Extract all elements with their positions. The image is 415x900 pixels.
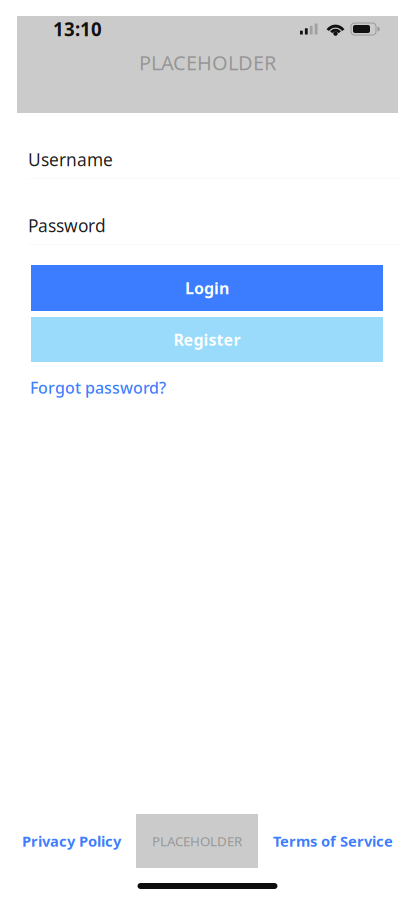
staticText: Username: [28, 148, 113, 171]
staticText: Password: [28, 214, 106, 237]
staticText: PLACEHOLDER: [152, 832, 242, 850]
button[interactable]: Forgot password?: [30, 377, 166, 398]
staticText: Login: [185, 277, 229, 299]
button[interactable]: Privacy Policy: [22, 831, 121, 851]
button[interactable]: Advertisement: [136, 814, 258, 868]
staticText: Terms of Service: [273, 831, 393, 851]
staticText: Forgot password?: [30, 377, 166, 398]
button[interactable]: Terms of Service: [273, 831, 393, 851]
staticText: Privacy Policy: [22, 831, 121, 851]
button[interactable]: Password: [28, 207, 400, 245]
staticText: 13:10: [53, 17, 102, 41]
button[interactable]: Username: [28, 141, 400, 179]
staticText: PLACEHOLDER: [139, 49, 276, 76]
staticText: Register: [173, 329, 240, 350]
button[interactable]: Login: [31, 265, 383, 311]
button[interactable]: Register: [31, 317, 383, 362]
